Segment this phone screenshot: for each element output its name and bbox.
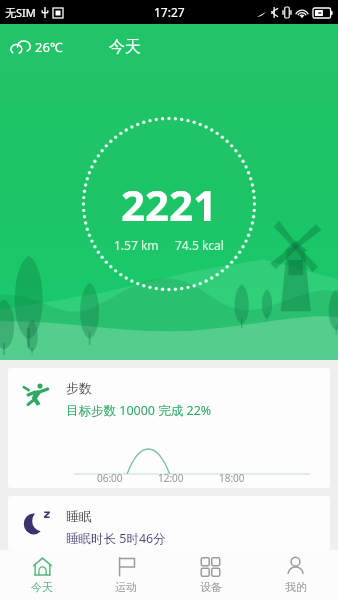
staticText: 12:00 [158, 471, 184, 485]
button[interactable]: Steps [8, 368, 330, 488]
staticText: 睡眠 [66, 508, 92, 524]
staticText: 步数 [66, 380, 92, 396]
staticText: 17:27 [154, 4, 185, 20]
staticText: 目标步数 10000 完成 22% [66, 402, 212, 419]
staticText: 睡眠时长 5时46分 [66, 530, 166, 547]
staticText: 今天 [109, 37, 141, 57]
staticText: 我的 [285, 580, 307, 594]
staticText: 06:00 [97, 471, 123, 485]
staticText: 2221 [121, 176, 218, 233]
button[interactable]: Sleep [8, 496, 330, 550]
staticText: 无SIM [5, 5, 36, 20]
staticText: 26℃ [35, 38, 63, 56]
staticText: 18:00 [219, 471, 245, 485]
button[interactable]: Weather [10, 38, 63, 56]
other: Steps [22, 380, 52, 410]
button[interactable]: 设备 [168, 550, 253, 600]
staticText: 运动 [115, 580, 137, 594]
staticText: 74.5 kcal [175, 237, 224, 253]
button[interactable]: 今天 [0, 550, 84, 600]
other: Sleep [22, 508, 52, 538]
button[interactable]: 运动 [84, 550, 168, 600]
button[interactable]: 我的 [253, 550, 338, 600]
staticText: 设备 [200, 580, 222, 594]
staticText: 1.57 km [114, 237, 159, 253]
other: Weather [10, 40, 32, 55]
staticText: 今天 [31, 580, 53, 594]
